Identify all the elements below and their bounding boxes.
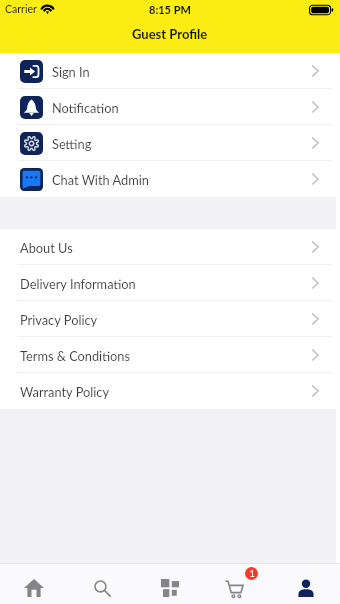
staticText: Terms & Conditions xyxy=(20,348,131,363)
staticText: 1 xyxy=(249,568,255,579)
button[interactable]: Privacy Policy xyxy=(0,301,340,337)
staticText: Setting xyxy=(52,136,92,151)
staticText: Delivery Information xyxy=(20,276,136,291)
button[interactable]: Delivery Information xyxy=(0,265,340,301)
button[interactable]: Notification xyxy=(0,89,340,125)
button[interactable]: Sign In xyxy=(0,53,340,89)
button[interactable]: Chat With Admin xyxy=(0,161,340,197)
button[interactable]: Warranty Policy xyxy=(0,373,340,409)
button[interactable]: Profile xyxy=(272,564,340,604)
button[interactable]: Home xyxy=(0,564,68,604)
button[interactable]: About Us xyxy=(0,229,340,265)
staticText: 8:15 PM xyxy=(149,3,191,16)
staticText: Carrier xyxy=(5,3,37,16)
staticText: Notification xyxy=(52,100,119,115)
staticText: Warranty Policy xyxy=(20,384,110,399)
button[interactable]: Terms & Conditions xyxy=(0,337,340,373)
staticText: Chat With Admin xyxy=(52,172,149,187)
button[interactable]: Cart xyxy=(204,564,272,604)
staticText: Sign In xyxy=(52,64,90,79)
staticText: Guest Profile xyxy=(132,26,208,42)
staticText: Privacy Policy xyxy=(20,312,98,327)
staticText: About Us xyxy=(20,240,73,255)
button[interactable]: Setting xyxy=(0,125,340,161)
button[interactable]: Search xyxy=(68,564,136,604)
button[interactable]: Categories xyxy=(136,564,204,604)
